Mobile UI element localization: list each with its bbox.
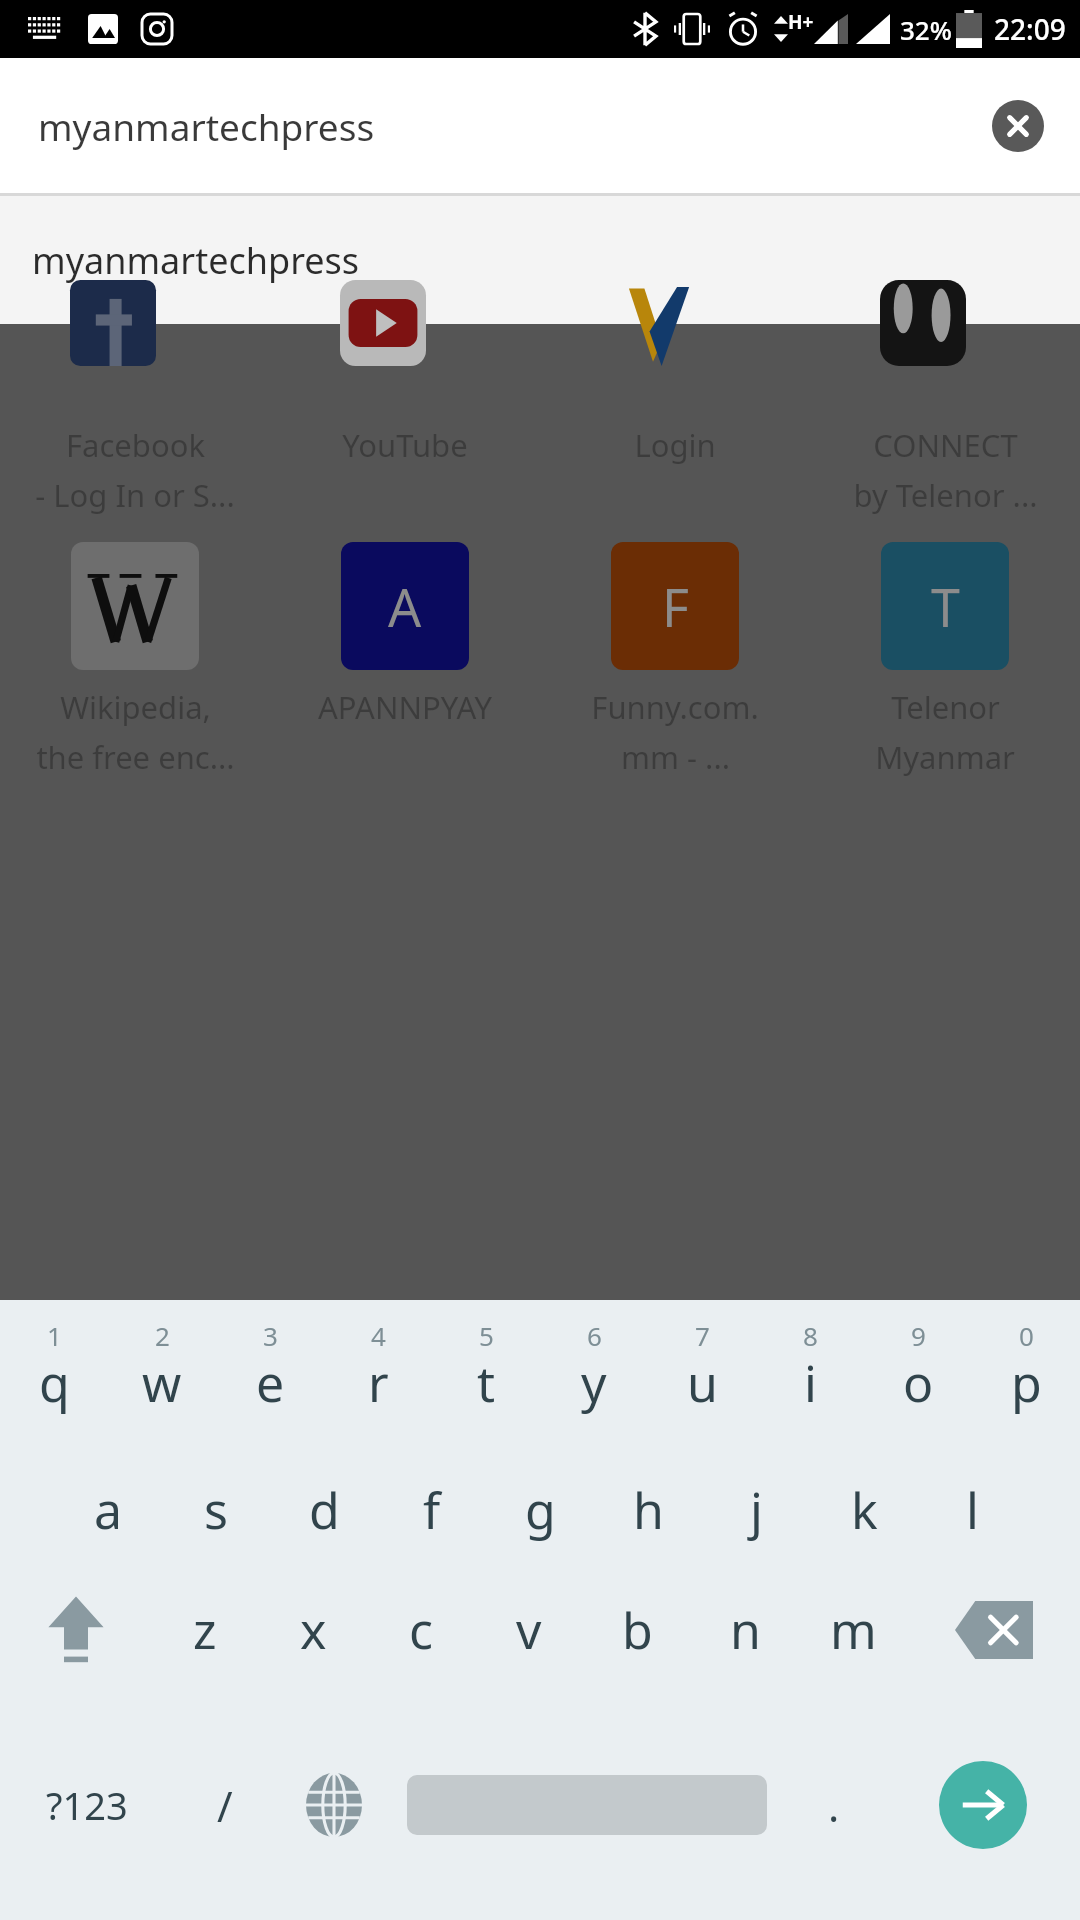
staticText: myanmartechpress — [32, 236, 360, 285]
staticText: y — [581, 1349, 607, 1417]
button[interactable]: Space — [391, 1690, 782, 1920]
button[interactable] — [880, 280, 1010, 366]
staticText: T — [931, 571, 960, 642]
staticText: 22:09 — [994, 10, 1066, 48]
staticText: e — [256, 1349, 285, 1417]
button[interactable]: k — [810, 1450, 918, 1570]
button[interactable]: v — [475, 1570, 583, 1690]
staticText: ?123 — [46, 1779, 128, 1831]
staticText: j — [750, 1476, 763, 1544]
staticText: i — [804, 1349, 817, 1417]
staticText: mm - ... — [621, 736, 730, 778]
button[interactable]: z — [151, 1570, 259, 1690]
button[interactable]: 0 — [972, 1300, 1080, 1450]
staticText: c — [409, 1596, 433, 1664]
staticText: / — [217, 1777, 233, 1834]
staticText: 3 — [263, 1318, 278, 1353]
button[interactable]: j — [702, 1450, 810, 1570]
staticText: 32% — [900, 12, 952, 47]
button[interactable]: h — [594, 1450, 702, 1570]
button[interactable] — [340, 280, 470, 366]
button[interactable]: ?123 — [0, 1690, 173, 1920]
staticText: s — [204, 1476, 228, 1544]
staticText: k — [851, 1476, 878, 1544]
staticText: 6 — [587, 1318, 602, 1353]
button[interactable]: 9 — [864, 1300, 972, 1450]
staticText: 7 — [695, 1318, 710, 1353]
button[interactable]: 5 — [432, 1300, 540, 1450]
button[interactable]: 6 — [540, 1300, 648, 1450]
button[interactable]: 3 — [216, 1300, 324, 1450]
button[interactable]: 7 — [648, 1300, 756, 1450]
button[interactable]: 1 — [0, 1300, 108, 1450]
staticText: Funny.com. — [591, 686, 759, 728]
staticText: A — [388, 571, 422, 642]
staticText: 2 — [155, 1318, 170, 1353]
staticText: Wikipedia, — [60, 686, 211, 728]
staticText: t — [477, 1349, 496, 1417]
staticText: CONNECT — [873, 424, 1018, 466]
staticText: r — [368, 1349, 389, 1417]
button[interactable]: Go — [885, 1690, 1080, 1920]
staticText: d — [309, 1476, 340, 1544]
staticText: 9 — [911, 1318, 926, 1353]
staticText: v — [516, 1596, 542, 1664]
staticText: 8 — [803, 1318, 818, 1353]
button[interactable] — [70, 280, 200, 366]
staticText: w — [142, 1349, 182, 1417]
button[interactable]: F — [611, 542, 739, 670]
staticText: a — [94, 1476, 123, 1544]
button[interactable]: myanmartechpress — [0, 58, 1080, 193]
button[interactable]: 2 — [108, 1300, 216, 1450]
button[interactable]: f — [378, 1450, 486, 1570]
button[interactable]: n — [691, 1570, 799, 1690]
staticText: APANNPYAY — [318, 686, 492, 728]
staticText: Myanmar — [875, 736, 1015, 778]
button[interactable]: 8 — [756, 1300, 864, 1450]
button[interactable] — [71, 542, 199, 670]
button[interactable]: / — [173, 1690, 276, 1920]
staticText: x — [300, 1596, 327, 1664]
staticText: 0 — [1019, 1318, 1034, 1353]
button[interactable]: Backspace — [907, 1570, 1080, 1690]
staticText: g — [525, 1476, 556, 1544]
staticText: z — [193, 1596, 217, 1664]
staticText: myanmartechpress — [38, 101, 375, 151]
button[interactable]: 4 — [324, 1300, 432, 1450]
staticText: F — [662, 571, 689, 642]
button[interactable]: x — [259, 1570, 367, 1690]
staticText: 1 — [47, 1318, 62, 1353]
staticText: Login — [634, 424, 716, 466]
button[interactable]: T — [881, 542, 1009, 670]
staticText: n — [730, 1596, 761, 1664]
button[interactable]: Clear search — [992, 100, 1044, 152]
staticText: 4 — [371, 1318, 386, 1353]
staticText: Telenor — [891, 686, 1000, 728]
staticText: the free enc... — [36, 736, 235, 778]
staticText: p — [1011, 1349, 1042, 1417]
staticText: o — [903, 1349, 934, 1417]
button[interactable]: Change language — [276, 1690, 391, 1920]
button[interactable]: a — [54, 1450, 162, 1570]
button[interactable]: d — [270, 1450, 378, 1570]
button[interactable]: l — [918, 1450, 1026, 1570]
button[interactable]: . — [782, 1690, 885, 1920]
button[interactable]: c — [367, 1570, 475, 1690]
staticText: l — [966, 1476, 979, 1544]
button[interactable]: myanmartechpress — [0, 196, 1080, 324]
button[interactable]: Shift — [0, 1570, 151, 1690]
button[interactable] — [610, 280, 740, 366]
staticText: q — [39, 1349, 70, 1417]
staticText: by Telenor ... — [853, 474, 1038, 516]
button[interactable]: A — [341, 542, 469, 670]
staticText: u — [687, 1349, 718, 1417]
staticText: f — [423, 1476, 441, 1544]
button[interactable]: g — [486, 1450, 594, 1570]
staticText: h — [633, 1476, 664, 1544]
staticText: YouTube — [342, 424, 468, 466]
button[interactable]: m — [799, 1570, 907, 1690]
button[interactable]: b — [583, 1570, 691, 1690]
button[interactable]: s — [162, 1450, 270, 1570]
staticText: m — [830, 1596, 877, 1664]
staticText: . — [828, 1777, 840, 1834]
